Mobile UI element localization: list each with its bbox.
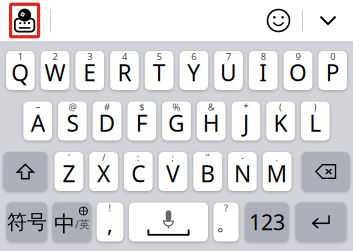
- staticText: 7: [226, 50, 231, 63]
- staticText: 123: [249, 208, 285, 236]
- staticText: Q: [11, 57, 29, 87]
- staticText: @: [68, 101, 76, 113]
- staticText: E: [83, 57, 96, 87]
- staticText: ;: [171, 151, 174, 164]
- button[interactable]: .: [263, 152, 291, 191]
- staticText: !: [109, 202, 112, 214]
- button[interactable]: Switch keyboard: [11, 4, 39, 37]
- staticText: (: [279, 101, 282, 113]
- staticText: T: [153, 57, 166, 87]
- staticText: S: [66, 108, 78, 138]
- staticText: :: [137, 151, 140, 164]
- staticText: F: [136, 108, 148, 138]
- staticText: ": [206, 151, 210, 164]
- staticText: U: [220, 57, 237, 87]
- button[interactable]: $: [127, 101, 156, 140]
- button[interactable]: Chinese English toggle: [52, 202, 91, 241]
- button[interactable]: 6: [179, 51, 208, 90]
- button[interactable]: 7: [214, 51, 243, 90]
- staticText: O: [289, 57, 307, 87]
- staticText: Y: [187, 57, 200, 87]
- staticText: C: [131, 158, 145, 188]
- staticText: K: [274, 108, 288, 138]
- button[interactable]: #: [93, 101, 121, 140]
- button[interactable]: ': [55, 152, 83, 191]
- staticText: V: [166, 158, 180, 188]
- staticText: B: [200, 158, 215, 188]
- button[interactable]: 2: [41, 51, 69, 90]
- button[interactable]: 0: [318, 51, 347, 90]
- button[interactable]: Emoji: [255, 2, 302, 38]
- staticText: R: [117, 57, 131, 87]
- staticText: H: [203, 108, 220, 138]
- staticText: X: [97, 158, 110, 188]
- button[interactable]: -: [228, 152, 257, 191]
- staticText: /: [102, 151, 105, 164]
- staticText: 8: [261, 50, 266, 63]
- button[interactable]: ?: [213, 202, 239, 241]
- staticText: %: [172, 101, 180, 113]
- staticText: 9: [295, 50, 300, 63]
- staticText: 6: [191, 50, 196, 63]
- button[interactable]: ": [193, 152, 222, 191]
- staticText: W: [45, 57, 66, 87]
- button[interactable]: ): [301, 101, 330, 140]
- button[interactable]: %: [162, 101, 191, 140]
- staticText: ): [314, 101, 317, 113]
- staticText: 1: [18, 50, 23, 63]
- staticText: G: [168, 108, 185, 138]
- button[interactable]: Return: [296, 202, 346, 241]
- staticText: ~: [35, 101, 40, 113]
- staticText: /英: [75, 217, 90, 231]
- staticText: J: [243, 108, 249, 138]
- button[interactable]: 1: [6, 51, 35, 90]
- button[interactable]: Shift: [4, 152, 47, 191]
- staticText: 符号: [7, 210, 47, 234]
- button[interactable]: 123: [245, 202, 289, 241]
- button[interactable]: Delete: [302, 152, 349, 191]
- button[interactable]: 5: [145, 51, 173, 90]
- button[interactable]: Space: [129, 202, 208, 241]
- button[interactable]: &: [197, 101, 226, 140]
- staticText: ?: [224, 202, 228, 214]
- staticText: A: [31, 108, 45, 138]
- staticText: &: [208, 101, 215, 113]
- button[interactable]: *: [232, 101, 260, 140]
- staticText: -: [241, 151, 244, 164]
- staticText: N: [234, 158, 251, 188]
- staticText: ': [68, 151, 70, 164]
- staticText: 2: [53, 50, 58, 63]
- staticText: 3: [87, 50, 92, 63]
- staticText: D: [99, 108, 116, 138]
- button[interactable]: 符号: [7, 202, 47, 241]
- button[interactable]: (: [266, 101, 295, 140]
- button[interactable]: 8: [249, 51, 278, 90]
- staticText: Z: [62, 158, 75, 188]
- staticText: 0: [330, 50, 335, 63]
- staticText: .: [276, 151, 279, 164]
- button[interactable]: 4: [110, 51, 139, 90]
- button[interactable]: 3: [75, 51, 104, 90]
- button[interactable]: @: [58, 101, 87, 140]
- staticText: #: [104, 101, 110, 113]
- staticText: 5: [157, 50, 162, 63]
- button[interactable]: !: [97, 202, 123, 241]
- button[interactable]: ;: [159, 152, 187, 191]
- staticText: *: [243, 101, 248, 113]
- button[interactable]: Hide keyboard: [303, 2, 353, 38]
- staticText: ,: [107, 210, 113, 238]
- button[interactable]: :: [124, 152, 153, 191]
- staticText: 4: [122, 50, 127, 63]
- staticText: P: [326, 57, 340, 87]
- staticText: 中: [54, 211, 75, 237]
- staticText: $: [139, 101, 144, 113]
- button[interactable]: 9: [284, 51, 312, 90]
- button[interactable]: /: [89, 152, 118, 191]
- staticText: 。: [216, 212, 235, 235]
- staticText: M: [267, 158, 288, 188]
- staticText: L: [309, 108, 321, 138]
- staticText: I: [259, 57, 267, 87]
- button[interactable]: ~: [23, 101, 52, 140]
